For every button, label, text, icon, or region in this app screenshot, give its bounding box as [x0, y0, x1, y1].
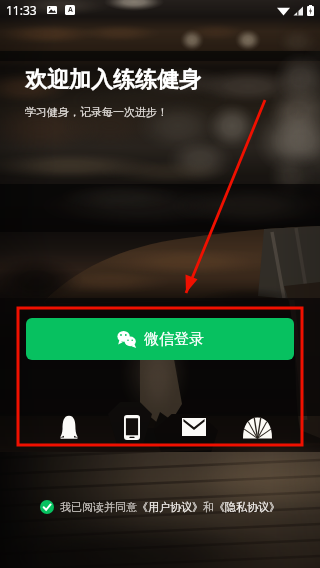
button[interactable]: 华为登录: [237, 407, 277, 447]
staticText: 和: [203, 500, 214, 514]
button[interactable]: 手机号登录: [112, 407, 152, 447]
button[interactable]: 《隐私协议》: [214, 500, 280, 514]
button[interactable]: 邮箱登录: [174, 407, 214, 447]
button[interactable]: 微信登录: [26, 318, 294, 360]
button[interactable]: QQ 登录: [49, 407, 89, 447]
staticText: 微信登录: [144, 330, 204, 349]
staticText: 欢迎加入练练健身: [25, 66, 201, 94]
staticText: 11:33: [6, 2, 37, 18]
staticText: 学习健身，记录每一次进步！: [25, 105, 168, 119]
staticText: 我已阅读并同意: [60, 500, 137, 514]
button[interactable]: 《用户协议》: [137, 500, 203, 514]
button[interactable]: 同意协议: [40, 500, 54, 514]
staticText: A: [68, 5, 73, 15]
